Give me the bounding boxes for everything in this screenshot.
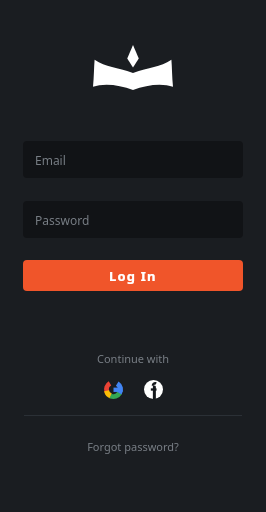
- staticText: Forgot password?: [87, 439, 179, 454]
- staticText: Password: [35, 212, 90, 228]
- button[interactable]: Log In: [23, 260, 243, 291]
- button[interactable]: Password: [23, 201, 243, 238]
- staticText: Email: [35, 152, 66, 168]
- button[interactable]: Continue with Google: [102, 378, 125, 401]
- button[interactable]: Email: [23, 141, 243, 178]
- staticText: Log In: [109, 267, 157, 285]
- button[interactable]: Forgot password?: [77, 436, 189, 457]
- button[interactable]: Continue with Facebook: [142, 378, 165, 401]
- staticText: Continue with: [97, 351, 170, 366]
